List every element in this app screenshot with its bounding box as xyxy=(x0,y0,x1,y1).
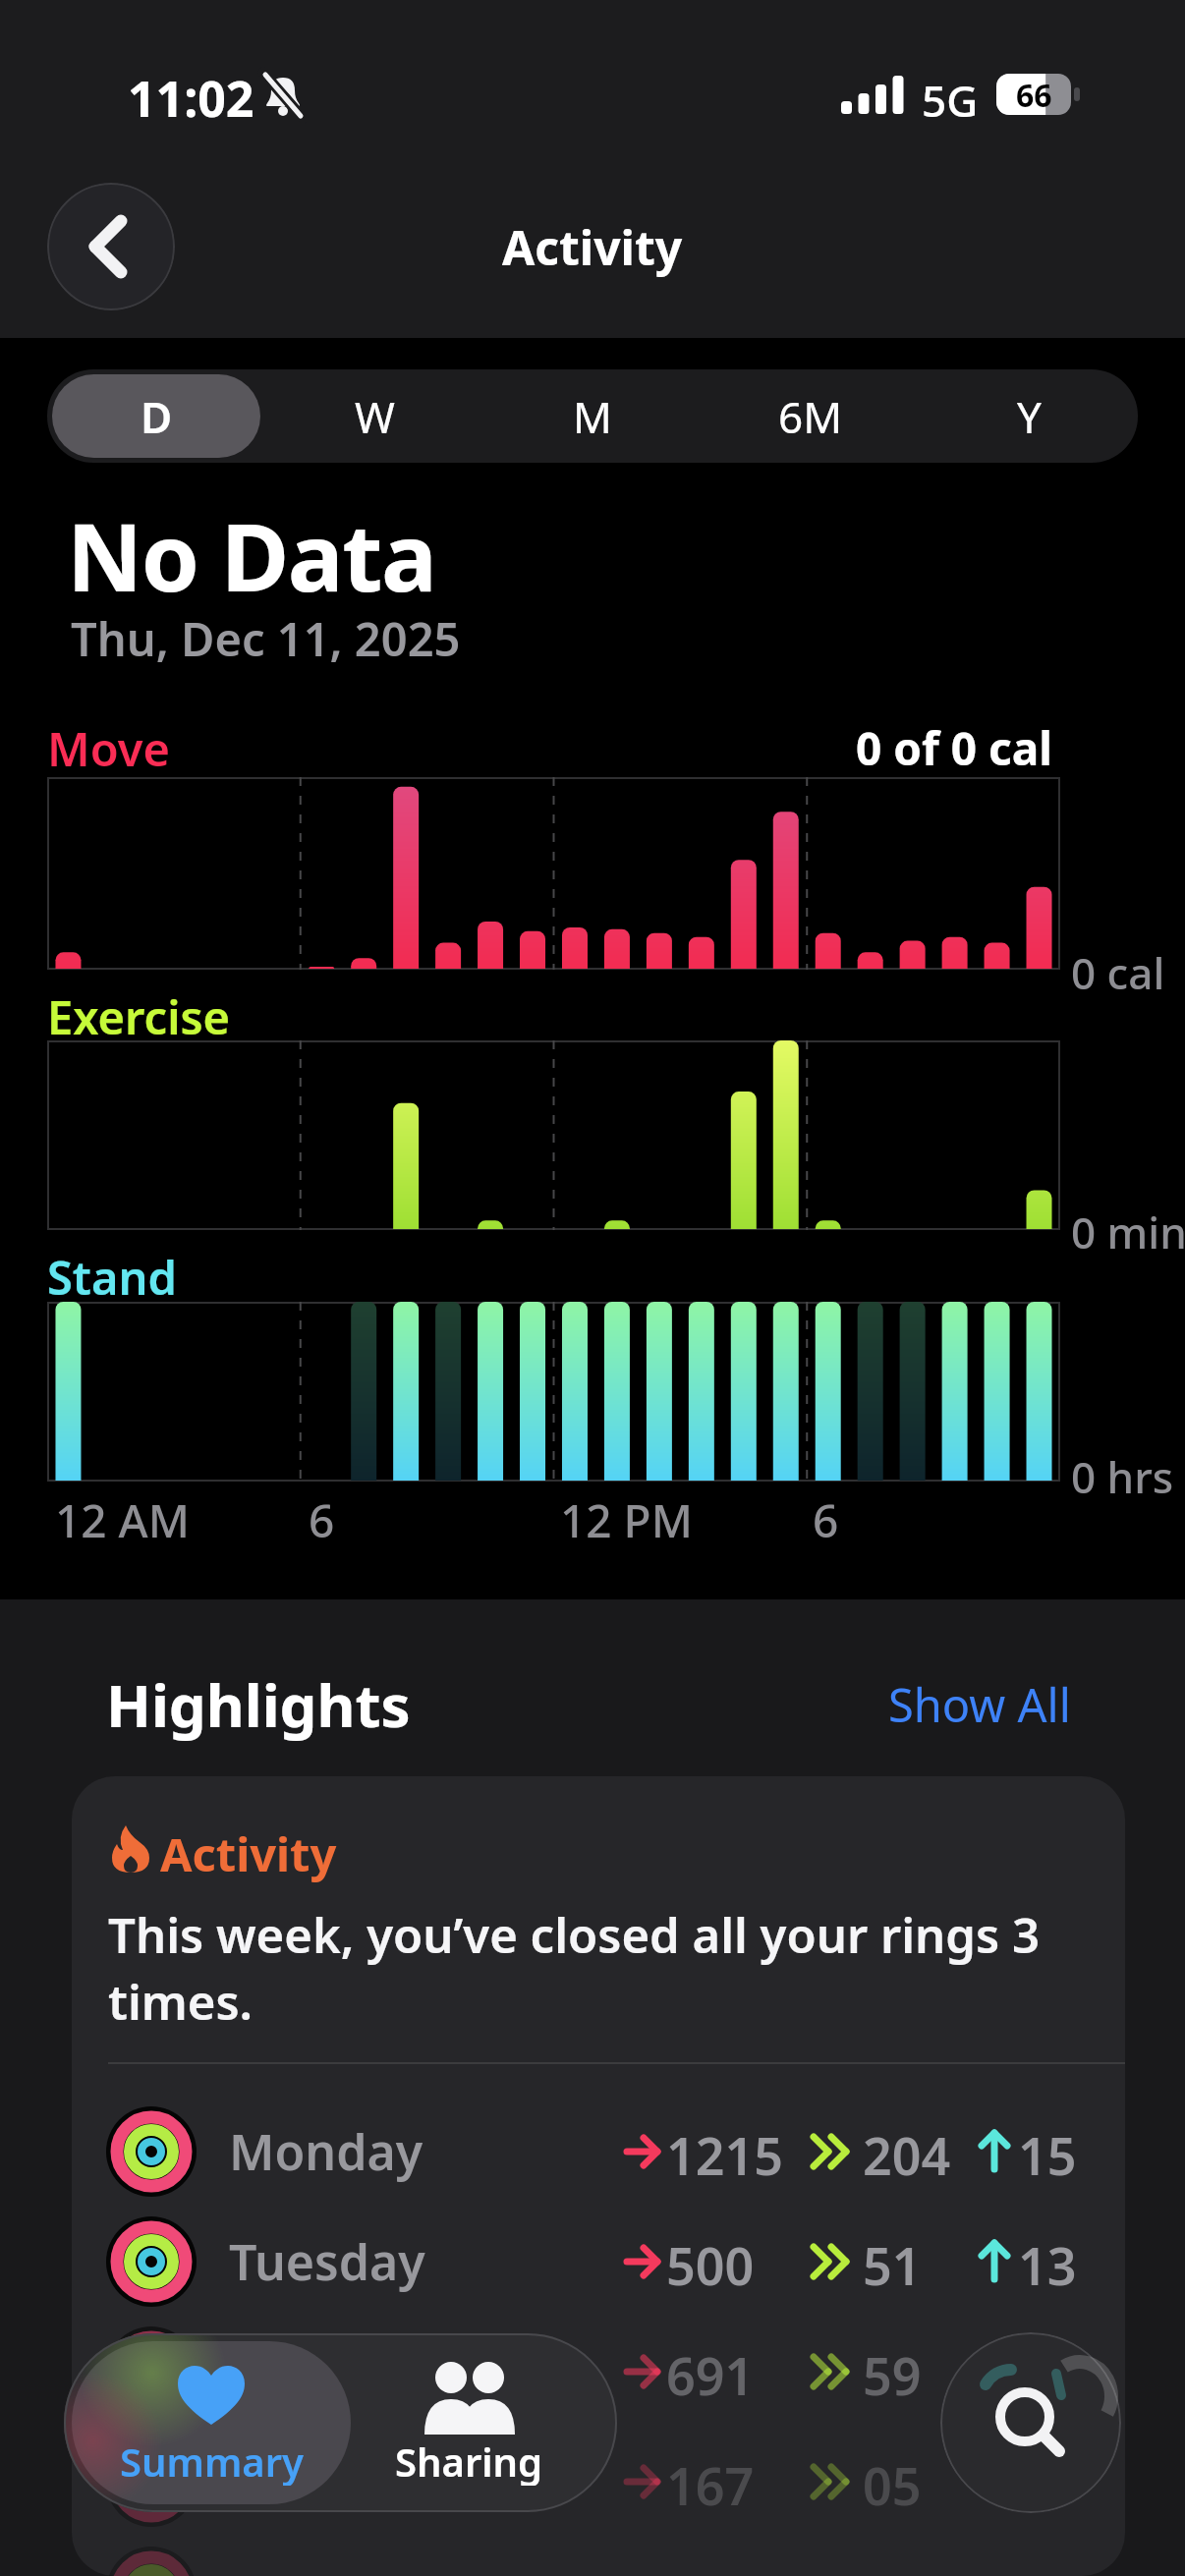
staticText: D xyxy=(141,387,173,446)
staticText: W xyxy=(355,387,395,446)
button[interactable]: 6M xyxy=(702,369,920,463)
staticText: 12 PM xyxy=(560,1489,693,1551)
staticText: 0 min xyxy=(1071,1203,1185,1261)
button[interactable] xyxy=(72,2341,351,2504)
staticText: 0 of 0 cal xyxy=(856,717,1053,772)
button[interactable] xyxy=(351,2341,610,2504)
staticText: Sharing xyxy=(395,2435,543,2486)
staticText: 500 xyxy=(666,2230,755,2293)
staticText: Activity xyxy=(502,215,683,279)
staticText: Monday xyxy=(229,2118,423,2185)
staticText: Show All xyxy=(888,1673,1071,1736)
staticText: 59 xyxy=(863,2340,922,2403)
staticText: 13 xyxy=(1018,2230,1077,2293)
staticText: 5G xyxy=(922,71,979,130)
staticText: Highlights xyxy=(106,1664,411,1745)
staticText: Y xyxy=(1017,387,1042,446)
staticText: Exercise xyxy=(47,985,231,1048)
staticText: Summary xyxy=(120,2435,304,2486)
button[interactable] xyxy=(940,2332,1121,2513)
staticText: Move xyxy=(47,717,170,780)
staticText: 66 xyxy=(1016,74,1052,115)
staticText: 167 xyxy=(666,2450,755,2513)
staticText: 691 xyxy=(666,2340,755,2403)
staticText: This week, you’ve closed all your rings … xyxy=(108,1902,1040,2035)
staticText: 12 AM xyxy=(55,1489,190,1551)
button[interactable] xyxy=(72,1776,1125,2576)
button[interactable]: M xyxy=(483,369,702,463)
staticText: Thu, Dec 11, 2025 xyxy=(71,607,461,670)
staticText: M xyxy=(573,387,612,446)
staticText: 6 xyxy=(309,1489,335,1551)
staticText: 6 xyxy=(813,1489,839,1551)
button[interactable]: D xyxy=(47,369,265,463)
staticText: 51 xyxy=(863,2230,922,2293)
button[interactable]: W xyxy=(265,369,483,463)
staticText: 6M xyxy=(778,387,843,446)
staticText: Thursday xyxy=(229,2448,452,2515)
staticText: 0 cal xyxy=(1071,943,1165,1002)
button[interactable] xyxy=(47,183,175,310)
staticText: Stand xyxy=(47,1246,177,1309)
staticText: 11:02 xyxy=(128,65,254,132)
staticText: No Data xyxy=(67,491,436,618)
staticText: 05 xyxy=(863,2450,922,2513)
button[interactable]: Y xyxy=(920,369,1138,463)
button[interactable]: Show All xyxy=(855,1670,1071,1739)
staticText: 1215 xyxy=(666,2120,783,2183)
staticText: Tuesday xyxy=(229,2228,425,2295)
staticText: 204 xyxy=(863,2120,951,2183)
staticText: 15 xyxy=(1018,2120,1077,2183)
staticText: 0 hrs xyxy=(1071,1447,1174,1506)
staticText: Activity xyxy=(160,1822,337,1885)
staticText: Wednesday xyxy=(229,2338,505,2405)
